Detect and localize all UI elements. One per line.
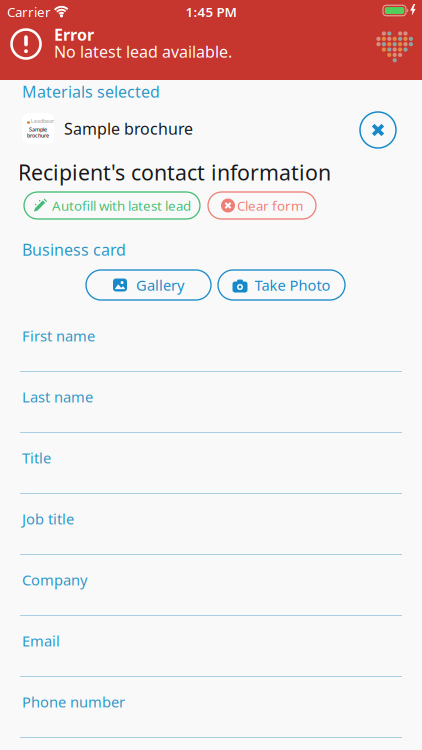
staticText: Title <box>22 448 51 467</box>
staticText: No latest lead available. <box>54 41 232 62</box>
staticText: Sample brochure <box>64 118 193 139</box>
staticText: First name <box>22 326 95 345</box>
staticText: Gallery <box>136 275 184 295</box>
staticText: Company <box>22 570 87 589</box>
staticText: Carrier <box>7 3 51 21</box>
button[interactable]: Take Photo <box>218 270 345 300</box>
button[interactable]: Clear form <box>208 192 316 219</box>
staticText: Sample <box>29 126 47 133</box>
staticText: 1:45 PM <box>185 3 236 21</box>
staticText: Error <box>54 24 94 45</box>
staticText: Materials selected <box>22 81 160 102</box>
staticText: Phone number <box>22 692 125 711</box>
staticText: brochure <box>27 132 49 139</box>
staticText: Take Photo <box>254 275 330 295</box>
button[interactable]: Gallery <box>86 270 211 300</box>
staticText: Business card <box>22 239 126 260</box>
staticText: Job title <box>22 509 74 528</box>
staticText: Autofill with latest lead <box>52 197 191 214</box>
staticText: Leadbear <box>31 117 54 125</box>
staticText: Email <box>22 631 60 650</box>
staticText: Clear form <box>237 197 303 214</box>
staticText: Recipient's contact information <box>18 158 331 186</box>
staticText: Last name <box>22 387 93 406</box>
button[interactable]: Autofill with latest lead <box>24 192 200 219</box>
button[interactable] <box>360 112 396 148</box>
